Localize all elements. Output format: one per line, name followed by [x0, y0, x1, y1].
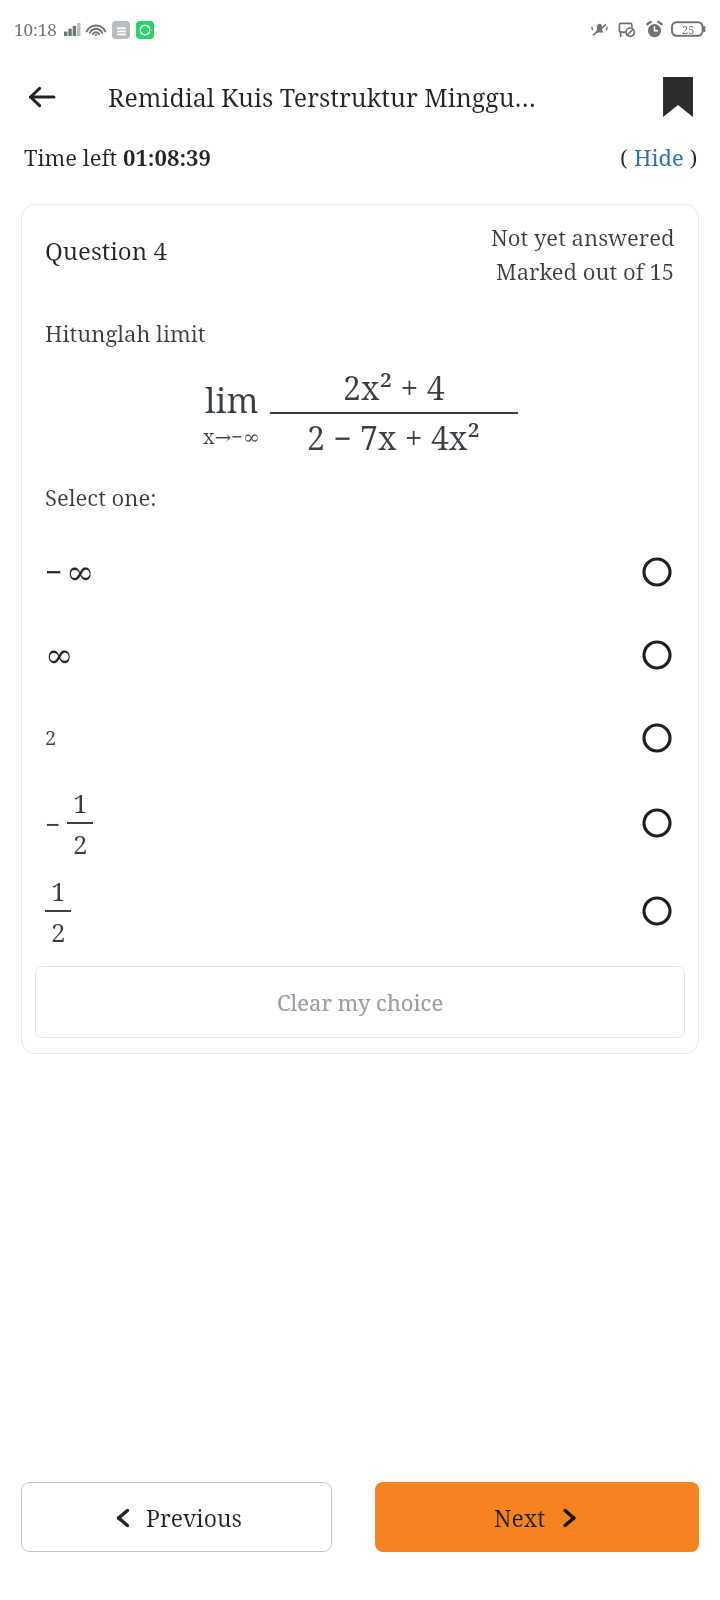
- staticText: ∞: [45, 635, 74, 675]
- button[interactable]: Bookmark: [650, 69, 706, 125]
- staticText: Next: [494, 1502, 546, 1533]
- staticText: 1: [51, 873, 66, 908]
- staticText: −: [45, 806, 61, 841]
- button[interactable]: 2: [21, 696, 699, 779]
- staticText: 25: [682, 22, 695, 37]
- staticText: 2: [45, 724, 57, 751]
- staticText: Hide: [634, 142, 684, 172]
- staticText: (: [620, 142, 634, 172]
- staticText: Not yet answered: [491, 222, 675, 252]
- staticText: 2x² + 4: [343, 366, 445, 410]
- staticText: 01:08:39: [123, 142, 211, 172]
- staticText: Marked out of 15: [496, 256, 675, 286]
- button[interactable]: 1: [21, 866, 699, 956]
- staticText: Time left: [24, 142, 123, 172]
- button[interactable]: −: [21, 779, 699, 866]
- staticText: Select one:: [45, 482, 157, 512]
- staticText: Clear my choice: [277, 987, 444, 1017]
- staticText: Remidial Kuis Terstruktur Minggu…: [108, 80, 537, 114]
- staticText: ): [684, 142, 698, 172]
- staticText: 2 − 7x + 4x²: [307, 416, 481, 460]
- staticText: 2: [73, 826, 88, 861]
- button[interactable]: Next: [375, 1482, 699, 1552]
- staticText: Question 4: [45, 234, 167, 267]
- button[interactable]: ∞: [21, 613, 699, 696]
- staticText: 1: [73, 785, 88, 820]
- staticText: 10:18: [14, 18, 57, 41]
- staticText: ∞: [66, 552, 95, 592]
- button[interactable]: −: [21, 530, 699, 613]
- staticText: −: [45, 551, 63, 592]
- button[interactable]: Previous: [21, 1482, 332, 1552]
- staticText: lim: [205, 377, 259, 423]
- button[interactable]: Back: [10, 65, 74, 129]
- staticText: Previous: [146, 1502, 242, 1533]
- staticText: x→−∞: [203, 423, 260, 450]
- staticText: Hitunglah limit: [45, 318, 206, 348]
- button[interactable]: Clear my choice: [35, 966, 685, 1038]
- staticText: 2: [51, 914, 66, 949]
- button[interactable]: Hide: [634, 142, 684, 172]
